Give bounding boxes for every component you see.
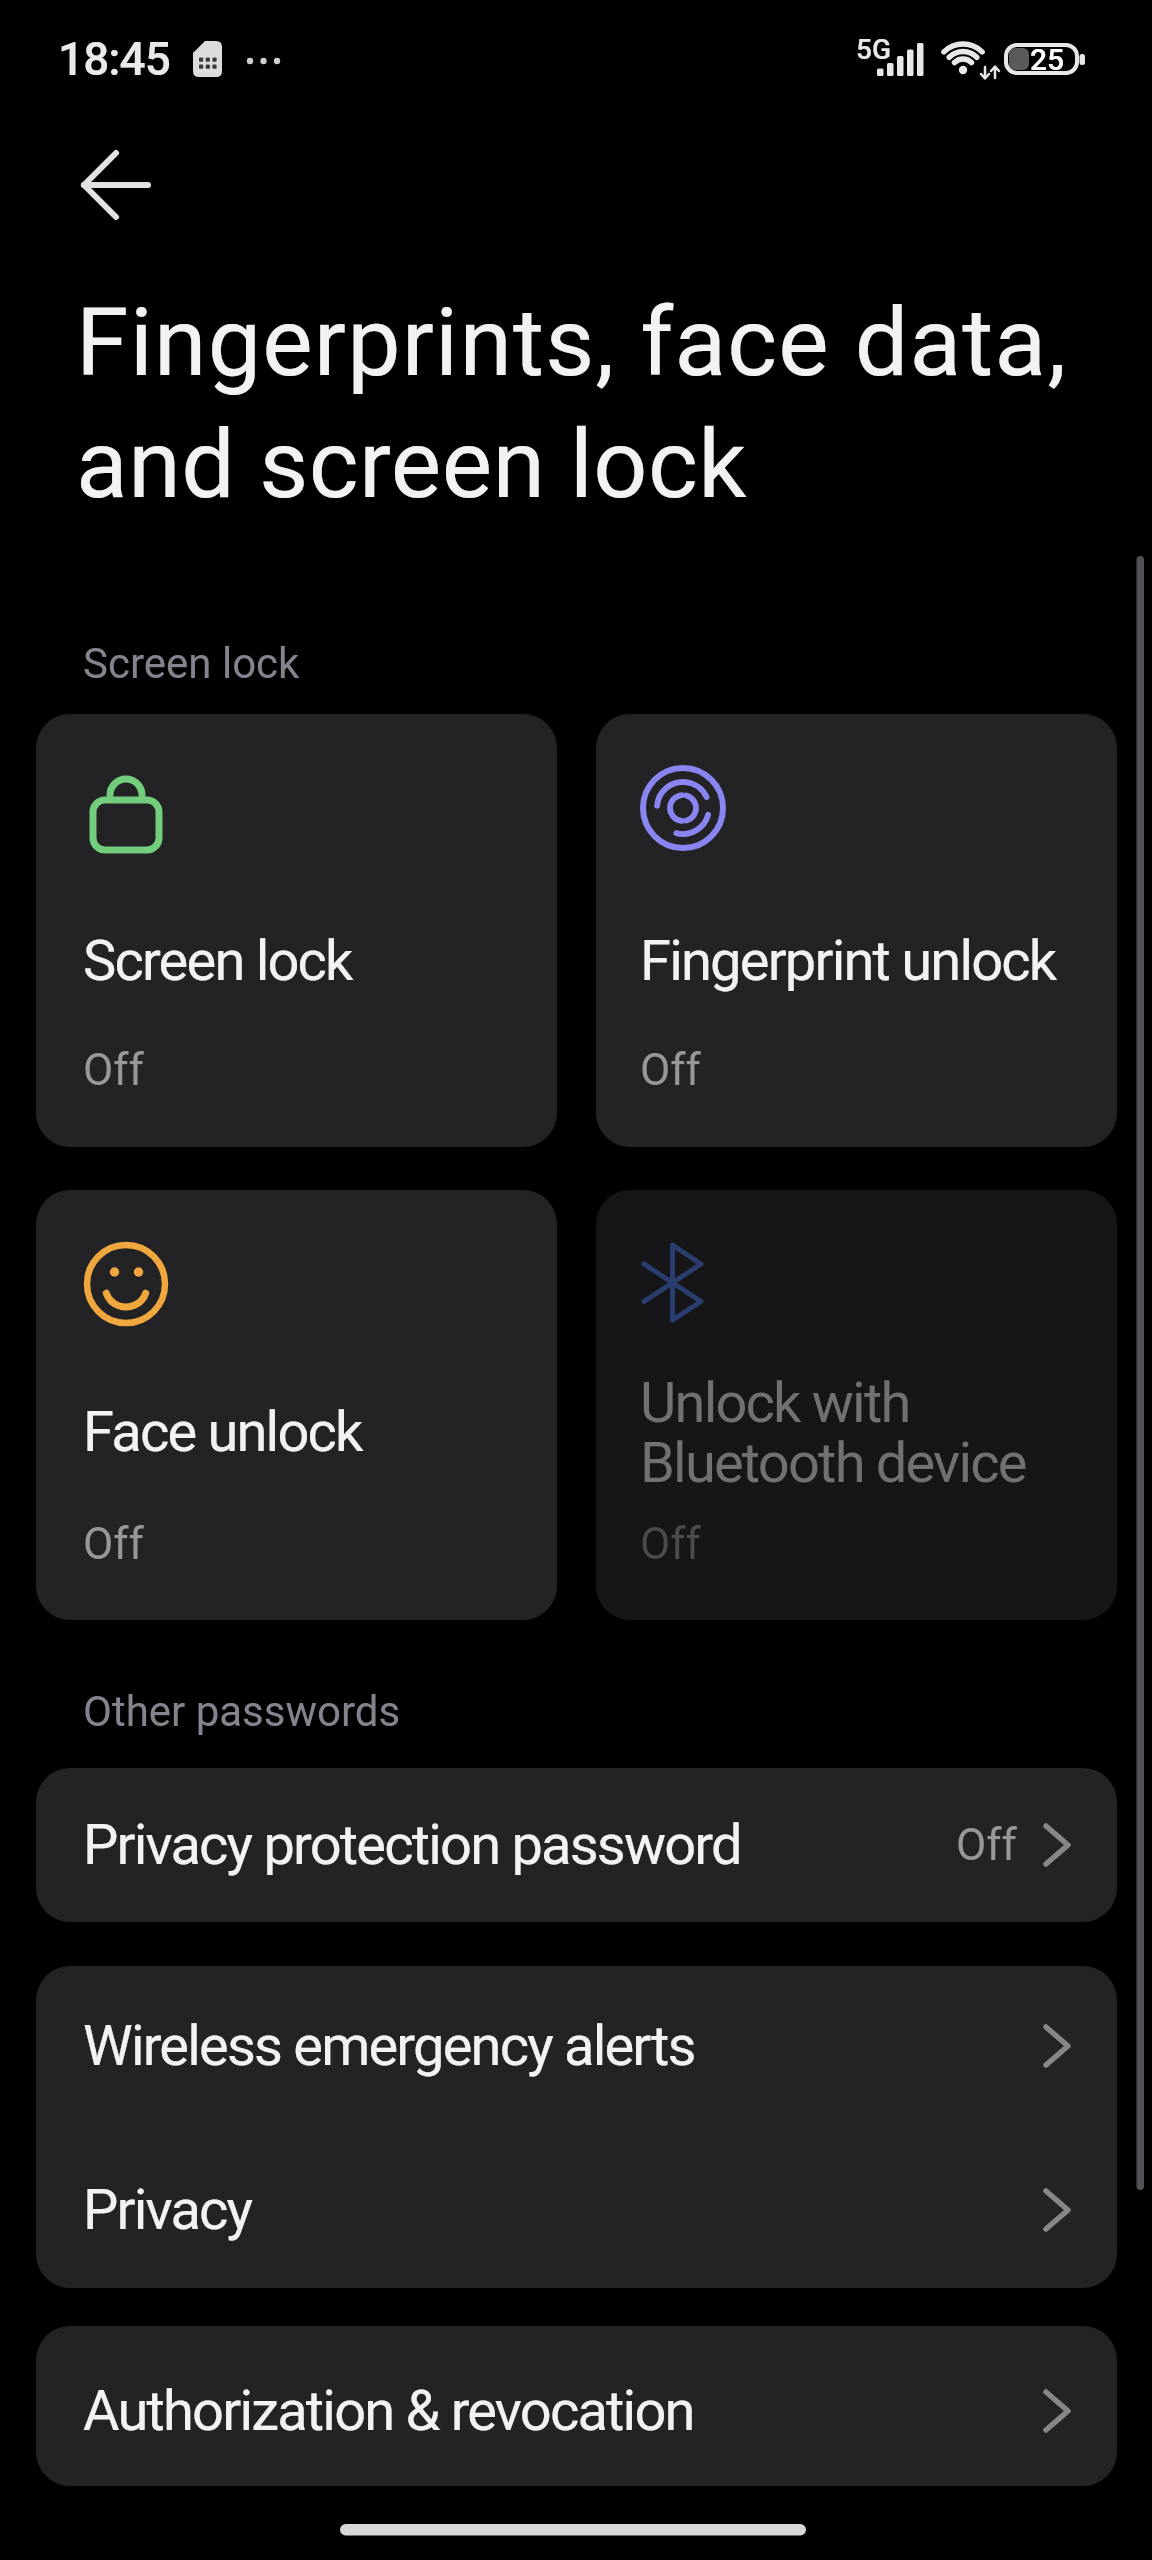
staticText: Fingerprints, face data,: [76, 287, 1068, 398]
staticText: Unlock with: [640, 1370, 910, 1436]
staticText: Off: [640, 1518, 701, 1570]
staticText: Face unlock: [83, 1399, 362, 1465]
button[interactable]: [36, 1190, 557, 1620]
staticText: Other passwords: [83, 1687, 401, 1736]
button[interactable]: [596, 714, 1117, 1147]
button[interactable]: [36, 1768, 1117, 1922]
button[interactable]: [36, 2127, 1117, 2288]
staticText: 25: [1030, 42, 1065, 77]
button[interactable]: [596, 1190, 1117, 1620]
staticText: Off: [956, 1819, 1017, 1871]
staticText: Authorization & revocation: [83, 2378, 694, 2444]
button[interactable]: [36, 714, 557, 1147]
staticText: Privacy protection password: [83, 1812, 741, 1878]
staticText: and screen lock: [76, 409, 747, 520]
staticText: Off: [83, 1518, 144, 1570]
staticText: Bluetooth device: [640, 1430, 1026, 1496]
staticText: 18:45: [58, 32, 170, 86]
button[interactable]: [36, 2326, 1117, 2486]
button[interactable]: [60, 145, 170, 225]
staticText: 5G: [856, 33, 891, 66]
staticText: Off: [83, 1044, 144, 1096]
staticText: Off: [640, 1044, 701, 1096]
staticText: Screen lock: [83, 928, 352, 994]
button[interactable]: [36, 1966, 1117, 2127]
staticText: Wireless emergency alerts: [83, 2013, 695, 2079]
staticText: Screen lock: [83, 639, 300, 688]
staticText: Fingerprint unlock: [640, 928, 1056, 994]
staticText: Privacy: [83, 2177, 252, 2243]
